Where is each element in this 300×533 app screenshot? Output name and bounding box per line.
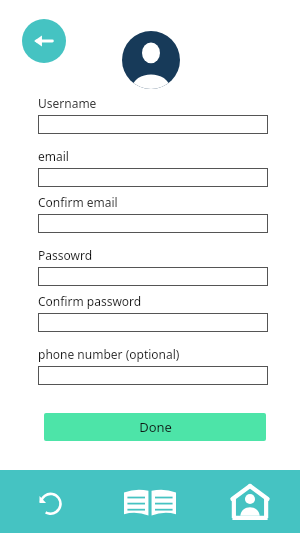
staticText: Passowrd — [38, 247, 93, 263]
button[interactable]: Undo — [0, 470, 100, 533]
staticText: phone number (optional) — [38, 346, 180, 362]
button[interactable]: email — [38, 168, 268, 187]
staticText: Confirm password — [38, 293, 142, 309]
staticText: Confirm email — [38, 194, 118, 210]
button[interactable]: Confirm email — [38, 214, 268, 233]
button[interactable]: Home — [200, 470, 300, 533]
staticText: Done — [139, 418, 172, 436]
button[interactable]: phone number (optional) — [38, 366, 268, 385]
button[interactable]: Passowrd — [38, 267, 268, 286]
button[interactable]: Done — [44, 413, 266, 441]
button[interactable]: Confirm password — [38, 313, 268, 332]
staticText: Username — [38, 95, 97, 111]
staticText: email — [38, 148, 69, 164]
button[interactable]: Back — [22, 19, 66, 63]
button[interactable]: Library — [100, 470, 200, 533]
button[interactable]: Username — [38, 115, 268, 134]
